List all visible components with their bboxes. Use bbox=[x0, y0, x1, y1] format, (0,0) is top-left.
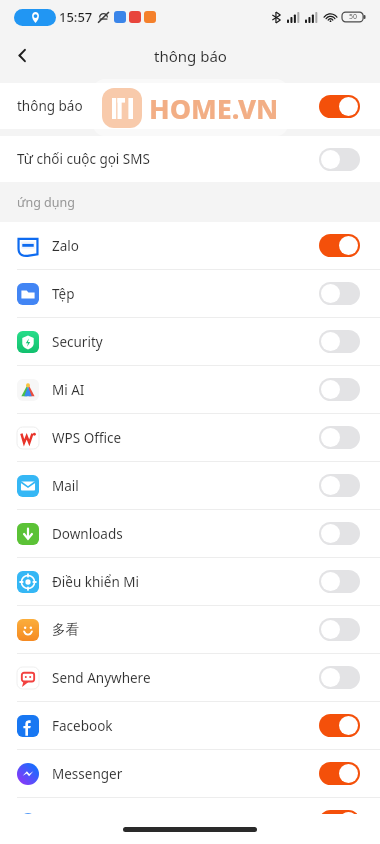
staticText: Downloads bbox=[52, 525, 123, 543]
staticText: 多看 bbox=[52, 621, 79, 638]
button[interactable]: Off bbox=[319, 570, 360, 593]
button[interactable]: Off bbox=[319, 426, 360, 449]
button[interactable]: WPS Office bbox=[0, 414, 380, 461]
staticText: Facebook bbox=[52, 717, 113, 735]
button[interactable]: 多看 bbox=[0, 606, 380, 653]
button[interactable]: Off bbox=[319, 522, 360, 545]
staticText: 15:57 bbox=[59, 8, 93, 26]
button[interactable]: Off bbox=[319, 474, 360, 497]
staticText: Mail bbox=[52, 477, 79, 495]
button[interactable]: On bbox=[319, 810, 360, 814]
staticText: thông báo bbox=[154, 46, 227, 66]
staticText: WPS Office bbox=[52, 429, 122, 447]
button[interactable]: Off bbox=[319, 618, 360, 641]
button[interactable]: Zalo bbox=[0, 222, 380, 269]
button[interactable]: On bbox=[319, 234, 360, 257]
button[interactable]: Back bbox=[0, 34, 44, 77]
button[interactable]: Off bbox=[319, 282, 360, 305]
staticText: Từ chối cuộc gọi SMS bbox=[17, 150, 150, 168]
button[interactable]: On bbox=[319, 714, 360, 737]
button[interactable]: Off bbox=[319, 148, 360, 171]
staticText: thông báo bbox=[17, 97, 83, 115]
button[interactable]: Mi AI bbox=[0, 366, 380, 413]
button[interactable]: Business Suite bbox=[0, 798, 380, 814]
button[interactable]: Off bbox=[319, 378, 360, 401]
button[interactable]: Tệp bbox=[0, 270, 380, 317]
button[interactable]: Messenger bbox=[0, 750, 380, 797]
staticText: HOME.VN bbox=[149, 90, 279, 127]
button[interactable]: thông báo bbox=[0, 83, 380, 129]
button[interactable]: Từ chối cuộc gọi SMS bbox=[0, 136, 380, 182]
button[interactable]: On bbox=[319, 762, 360, 785]
button[interactable]: Điều khiển Mi bbox=[0, 558, 380, 605]
staticText: 50 bbox=[349, 12, 358, 22]
staticText: Zalo bbox=[52, 237, 79, 255]
staticText: Security bbox=[52, 333, 103, 351]
staticText: ứng dụng bbox=[17, 194, 75, 211]
staticText: Điều khiển Mi bbox=[52, 573, 140, 591]
button[interactable]: Off bbox=[319, 666, 360, 689]
button[interactable]: Send Anywhere bbox=[0, 654, 380, 701]
button[interactable]: On bbox=[319, 95, 360, 118]
staticText: Tệp bbox=[52, 285, 75, 303]
button[interactable]: Security bbox=[0, 318, 380, 365]
button[interactable]: Downloads bbox=[0, 510, 380, 557]
staticText: Messenger bbox=[52, 765, 123, 783]
button[interactable]: Mail bbox=[0, 462, 380, 509]
button[interactable]: Off bbox=[319, 330, 360, 353]
staticText: Send Anywhere bbox=[52, 669, 151, 687]
button[interactable]: Facebook bbox=[0, 702, 380, 749]
staticText: Mi AI bbox=[52, 381, 85, 399]
